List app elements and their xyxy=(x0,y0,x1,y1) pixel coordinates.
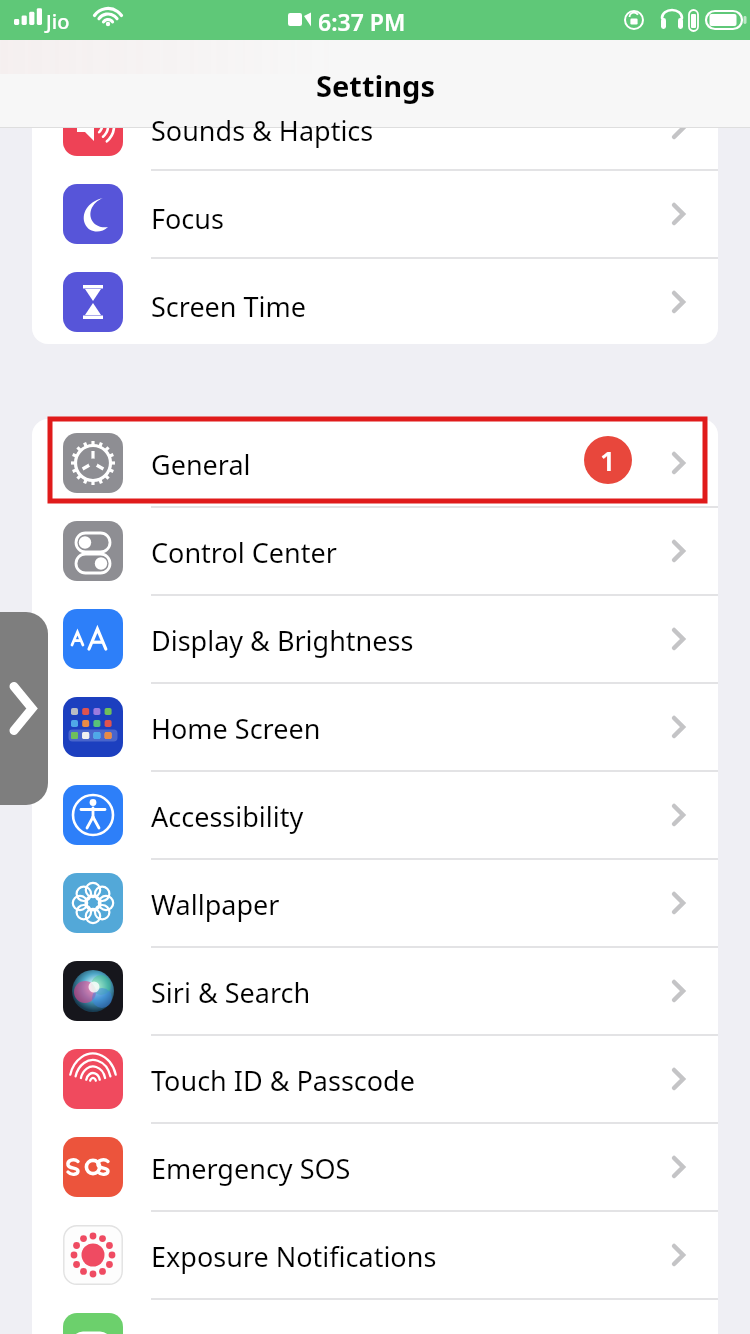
button[interactable]: Accessibility xyxy=(32,771,718,859)
staticText: Control Center xyxy=(151,534,337,571)
button[interactable]: Exposure Notifications xyxy=(32,1211,718,1299)
button[interactable]: Open navigation drawer xyxy=(0,612,48,805)
button[interactable]: Wallpaper xyxy=(32,859,718,947)
button[interactable]: Control Center xyxy=(32,507,718,595)
button[interactable]: Focus xyxy=(32,184,718,272)
button[interactable]: Home Screen xyxy=(32,683,718,771)
staticText: Siri & Search xyxy=(151,974,311,1011)
button[interactable]: Display & Brightness xyxy=(32,595,718,683)
staticText: Focus xyxy=(151,200,224,237)
staticText: Display & Brightness xyxy=(151,622,414,659)
staticText: Wallpaper xyxy=(151,886,280,923)
staticText: Exposure Notifications xyxy=(151,1238,437,1275)
button[interactable]: Battery xyxy=(32,1299,718,1334)
staticText: Sounds & Haptics xyxy=(151,112,374,149)
button[interactable]: General xyxy=(32,419,718,507)
button[interactable]: Screen Time xyxy=(32,272,718,360)
staticText: General xyxy=(151,446,251,483)
staticText: Jio xyxy=(46,8,70,35)
staticText: Screen Time xyxy=(151,288,307,325)
staticText: 6:37 PM xyxy=(318,6,406,37)
staticText: Accessibility xyxy=(151,798,304,835)
button[interactable]: Emergency SOS xyxy=(32,1123,718,1211)
staticText: Emergency SOS xyxy=(151,1150,351,1187)
button[interactable]: Touch ID & Passcode xyxy=(32,1035,718,1123)
staticText: Settings xyxy=(316,66,435,105)
button[interactable]: Sounds & Haptics xyxy=(32,96,718,184)
staticText: 1 xyxy=(600,442,616,479)
button[interactable]: Siri & Search xyxy=(32,947,718,1035)
staticText: Touch ID & Passcode xyxy=(151,1062,415,1099)
staticText: Home Screen xyxy=(151,710,321,747)
